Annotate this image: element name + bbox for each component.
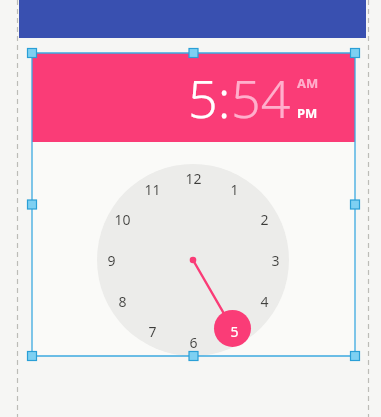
staticText: 6 [189, 333, 198, 352]
button[interactable]: PM [297, 104, 318, 122]
staticText: 4 [260, 292, 269, 311]
staticText: 12 [185, 169, 202, 188]
button[interactable]: 12 [179, 168, 207, 188]
button[interactable]: 6 [179, 332, 207, 352]
button[interactable]: 4 [250, 291, 278, 311]
staticText: 5 [230, 322, 239, 341]
staticText: 3 [271, 251, 280, 270]
button[interactable]: 2 [250, 209, 278, 229]
button[interactable]: 5: [32, 53, 355, 142]
staticText: 11 [144, 180, 161, 199]
button[interactable]: Clock dial [97, 164, 289, 356]
button[interactable]: 5: [188, 62, 231, 133]
button[interactable]: 1 [220, 179, 248, 199]
staticText: 2 [260, 210, 269, 229]
button[interactable]: 3 [261, 250, 289, 270]
staticText: 7 [148, 322, 157, 341]
button[interactable]: 10 [108, 209, 136, 229]
staticText: 8 [118, 292, 127, 311]
button[interactable]: 7 [138, 321, 166, 341]
staticText: 9 [107, 251, 116, 270]
button[interactable]: 9 [97, 250, 125, 270]
button[interactable]: 8 [108, 291, 136, 311]
button[interactable]: 5 [220, 321, 248, 341]
staticText: 10 [114, 210, 131, 229]
staticText: 1 [230, 180, 239, 199]
button[interactable]: AM [297, 74, 319, 92]
button[interactable]: 54 [231, 62, 291, 133]
button[interactable]: 11 [138, 179, 166, 199]
